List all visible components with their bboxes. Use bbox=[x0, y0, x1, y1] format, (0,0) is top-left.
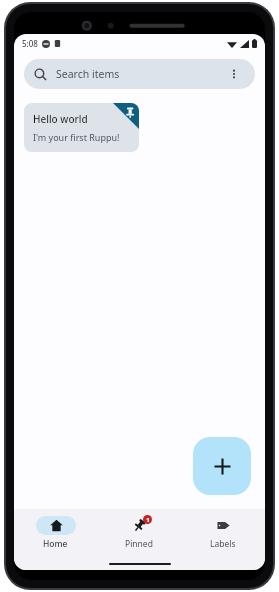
other: Pinned bbox=[113, 103, 139, 129]
button[interactable]: Hello world bbox=[24, 103, 139, 152]
staticText: 5:08 bbox=[22, 38, 38, 49]
staticText: Search items bbox=[56, 67, 120, 81]
button[interactable]: More options bbox=[223, 63, 245, 85]
button[interactable]: 1 bbox=[97, 509, 181, 557]
staticText: I'm your first Ruppu! bbox=[33, 131, 120, 143]
staticText: Home bbox=[43, 538, 68, 550]
staticText: Labels bbox=[210, 538, 236, 550]
button[interactable]: Home bbox=[14, 509, 97, 557]
staticText: Pinned bbox=[125, 538, 153, 550]
staticText: Hello world bbox=[33, 112, 88, 126]
button[interactable]: Labels bbox=[181, 509, 265, 557]
button[interactable]: Search items bbox=[24, 59, 255, 89]
staticText: 1 bbox=[146, 516, 150, 524]
button[interactable]: Add item bbox=[193, 437, 251, 495]
